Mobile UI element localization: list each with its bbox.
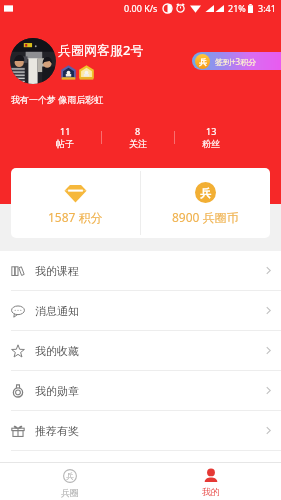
staticText: 兵圈网客服2号	[58, 41, 144, 59]
staticText: 消息通知	[35, 304, 79, 318]
button[interactable]: 兵	[141, 168, 270, 238]
staticText: 我的	[202, 486, 220, 497]
button[interactable]: 推荐有奖	[0, 411, 281, 450]
staticText: 签到+3积分	[215, 56, 257, 67]
staticText: 3:41	[258, 2, 276, 14]
button[interactable]: 个人信息	[0, 451, 281, 490]
button[interactable]: 兵	[192, 52, 281, 70]
staticText: 个人信息	[35, 464, 79, 478]
button[interactable]: 我的勋章	[0, 371, 281, 410]
button[interactable]: 兵	[0, 466, 140, 500]
staticText: 兵	[200, 186, 211, 200]
staticText: 我有一个梦 像雨后彩虹	[11, 93, 104, 105]
staticText: 我的收藏	[35, 344, 79, 358]
button[interactable]: 我的收藏	[0, 331, 281, 370]
button[interactable]: 我的课程	[0, 251, 281, 290]
button[interactable]: 8	[102, 125, 174, 149]
button[interactable]: 13	[175, 125, 247, 149]
staticText: 兵圈	[61, 487, 79, 498]
staticText: 1587 积分	[48, 209, 103, 225]
staticText: 帖子	[56, 138, 74, 149]
button[interactable]: 11	[29, 125, 101, 149]
staticText: 粉丝	[202, 138, 220, 149]
staticText: 兵	[66, 471, 74, 481]
staticText: 21%	[228, 2, 246, 14]
staticText: 8	[135, 125, 141, 137]
button[interactable]: 我的	[140, 466, 281, 500]
staticText: 我的课程	[35, 264, 79, 278]
staticText: 推荐有奖	[35, 424, 79, 438]
staticText: 11	[60, 125, 71, 137]
button[interactable]: 1587 积分	[11, 168, 140, 238]
button[interactable]: 消息通知	[0, 291, 281, 330]
staticText: 8900 兵圈币	[172, 209, 239, 225]
staticText: 13	[206, 125, 217, 137]
staticText: 0.00 K/s	[124, 2, 158, 14]
staticText: 我的勋章	[35, 384, 79, 398]
button[interactable]: Avatar	[10, 38, 56, 84]
staticText: 兵	[199, 57, 207, 67]
staticText: 关注	[129, 138, 147, 149]
